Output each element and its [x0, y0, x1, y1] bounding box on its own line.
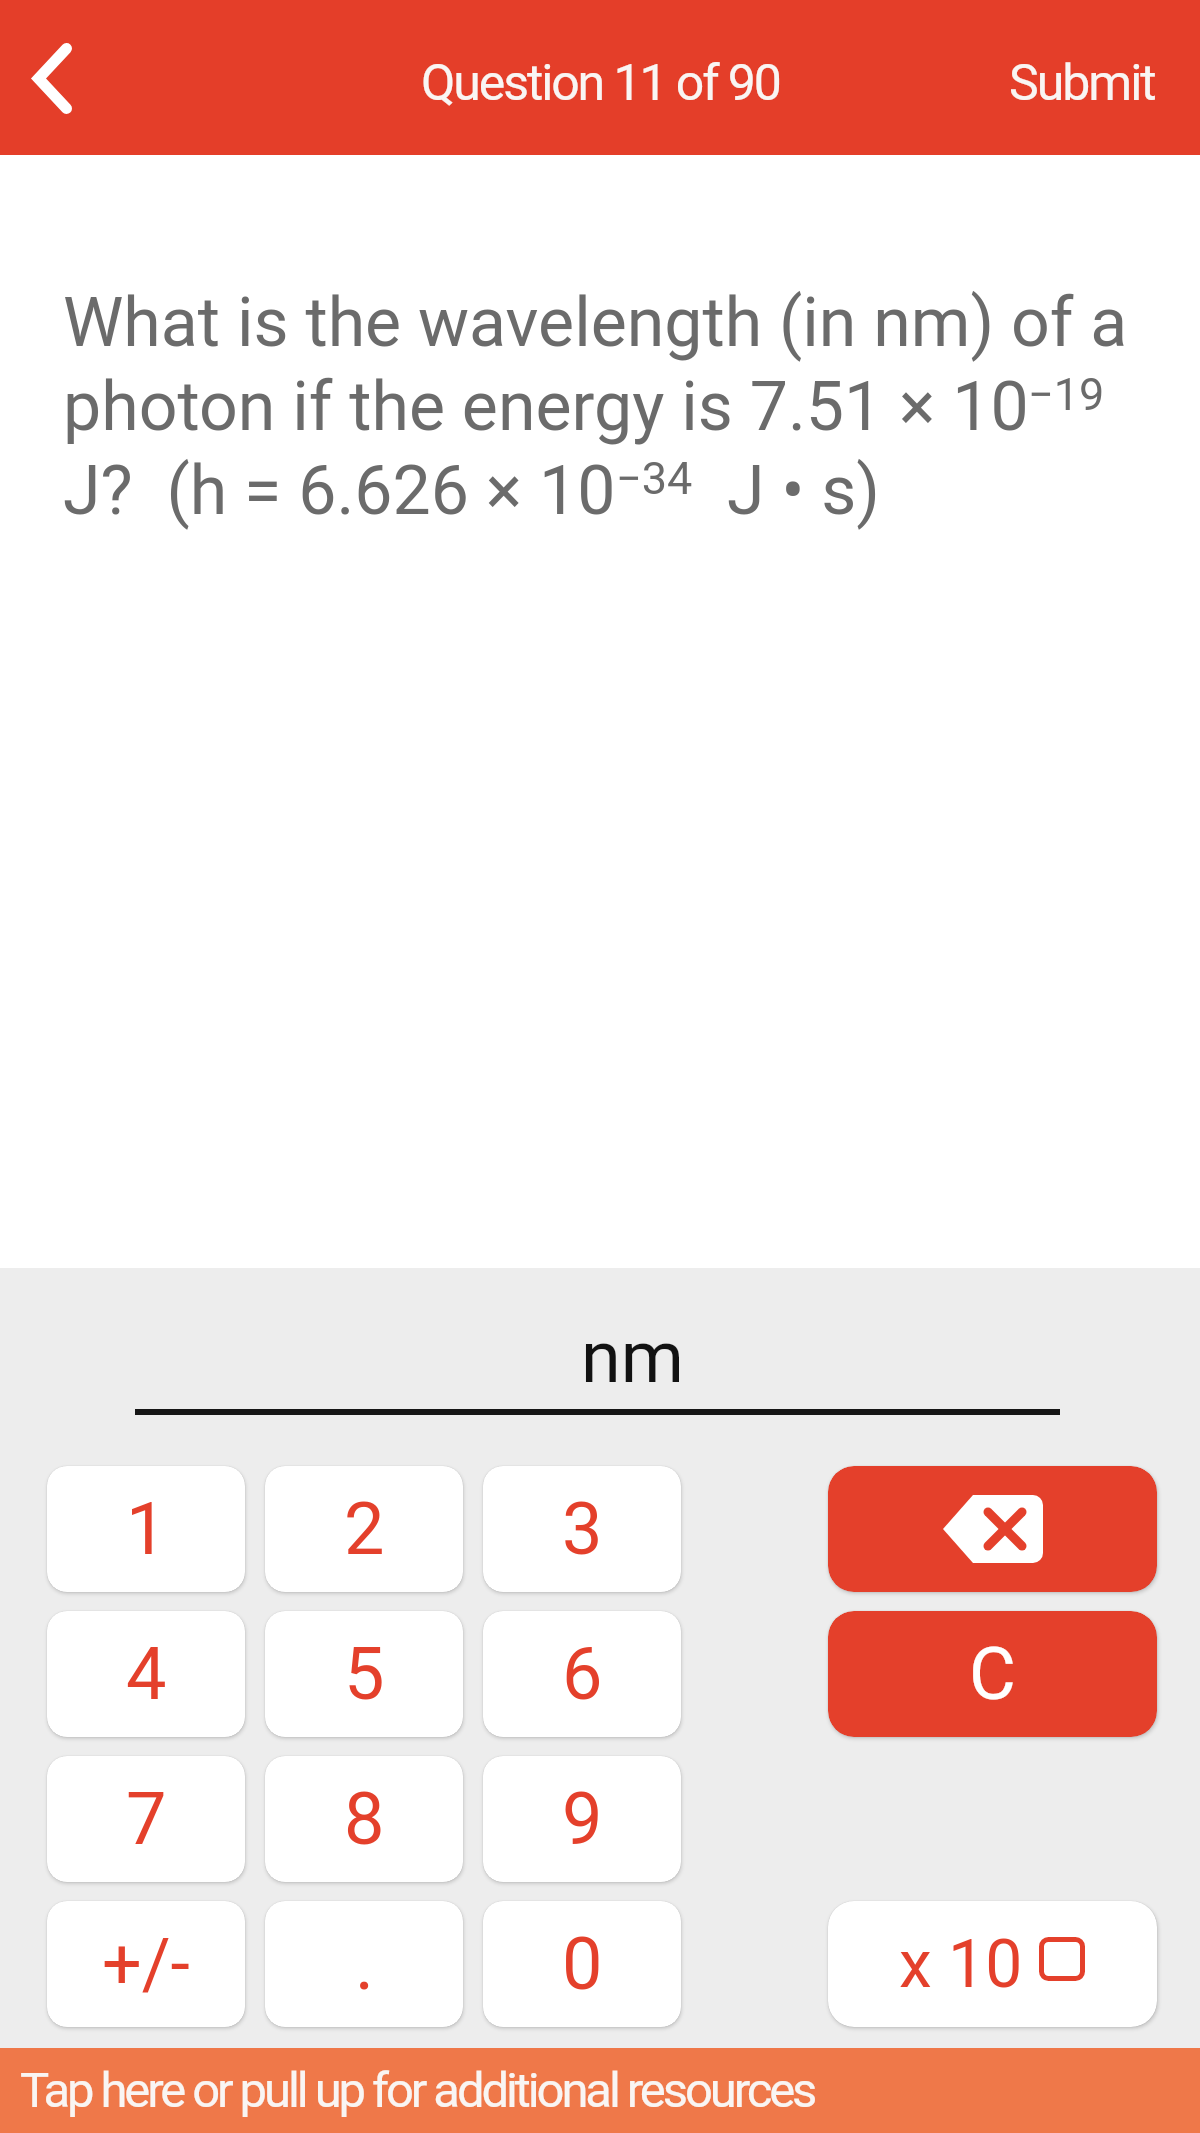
button[interactable]: 7 — [47, 1756, 245, 1882]
button[interactable]: 0 — [483, 1901, 681, 2027]
staticText: 3 — [562, 1487, 603, 1571]
staticText: 4 — [126, 1632, 167, 1716]
button[interactable]: 3 — [483, 1466, 681, 1592]
button[interactable]: Submit — [1009, 54, 1155, 113]
staticText: 7 — [126, 1777, 167, 1861]
staticText: −34 — [616, 452, 693, 505]
staticText: C — [969, 1632, 1016, 1716]
button[interactable]: 4 — [47, 1611, 245, 1737]
staticText: 8 — [344, 1777, 385, 1861]
button[interactable]: 2 — [265, 1466, 463, 1592]
button[interactable]: x 10 — [828, 1901, 1157, 2027]
staticText: 5 — [344, 1632, 385, 1716]
staticText: 0 — [562, 1922, 603, 2006]
staticText: 1 — [126, 1487, 167, 1571]
button[interactable]: 8 — [265, 1756, 463, 1882]
button[interactable]: 5 — [265, 1611, 463, 1737]
staticText: . — [355, 1922, 374, 2006]
button[interactable]: . — [265, 1901, 463, 2027]
button[interactable]: Tap here or pull up for additional resou… — [0, 2048, 1200, 2133]
button[interactable]: C — [828, 1611, 1157, 1737]
staticText: J • s) — [727, 451, 880, 531]
staticText: −19 — [1028, 368, 1105, 421]
staticText: photon if the energy is 7.51 × 10 — [63, 367, 1029, 447]
button[interactable]: 9 — [483, 1756, 681, 1882]
staticText: J? (h = 6.626 × 10 — [63, 451, 616, 531]
staticText: 9 — [562, 1777, 603, 1861]
button[interactable]: +/- — [47, 1901, 245, 2027]
button[interactable] — [828, 1466, 1157, 1592]
staticText: Submit — [1009, 54, 1155, 113]
button[interactable]: 1 — [47, 1466, 245, 1592]
staticText: Tap here or pull up for additional resou… — [20, 2062, 815, 2119]
staticText: Question 11 of 90 — [421, 54, 780, 113]
staticText: 6 — [562, 1632, 603, 1716]
button[interactable] — [10, 25, 100, 135]
staticText: x 10 — [899, 1926, 1023, 2003]
staticText: What is the wavelength (in nm) of a — [63, 283, 1128, 363]
button[interactable]: 6 — [483, 1611, 681, 1737]
staticText: 2 — [344, 1487, 385, 1571]
staticText: nm — [581, 1315, 684, 1399]
staticText: +/- — [102, 1923, 190, 2005]
